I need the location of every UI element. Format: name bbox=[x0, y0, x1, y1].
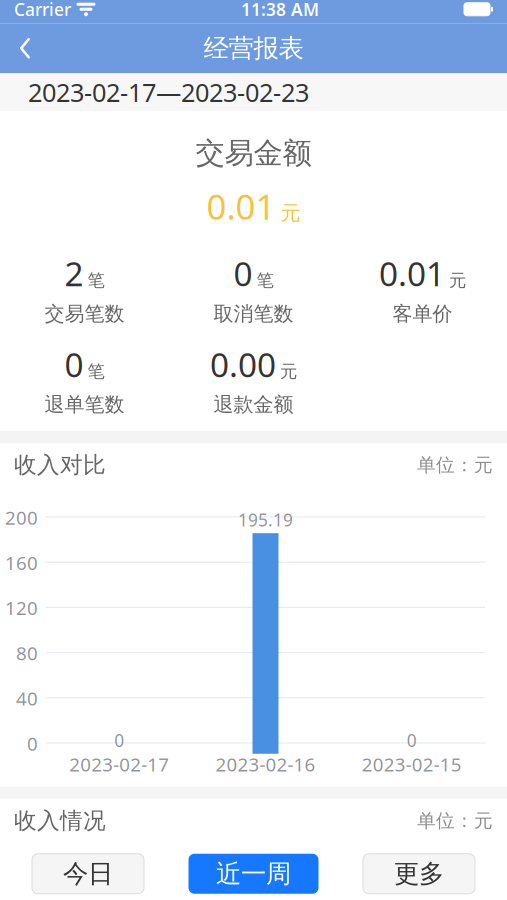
staticText: 0 bbox=[27, 731, 38, 756]
staticText: 元 bbox=[280, 201, 300, 225]
staticText: 0.00 bbox=[210, 342, 276, 386]
staticText: 80 bbox=[16, 641, 38, 665]
staticText: 经营报表 bbox=[203, 33, 303, 64]
button[interactable]: 更多 bbox=[363, 854, 475, 894]
staticText: 收入情况 bbox=[14, 807, 106, 835]
staticText: 笔 bbox=[87, 361, 104, 382]
button[interactable]: 返回 bbox=[0, 23, 50, 73]
staticText: 160 bbox=[5, 550, 38, 575]
staticText: 2 bbox=[64, 251, 83, 296]
staticText: 0 bbox=[407, 729, 417, 752]
staticText: 120 bbox=[5, 595, 38, 620]
button[interactable]: 今日 bbox=[32, 854, 144, 894]
staticText: 2023-02-17—2023-02-23 bbox=[28, 75, 309, 109]
staticText: 11:38 AM bbox=[241, 0, 319, 21]
staticText: 元 bbox=[280, 361, 297, 382]
staticText: 交易金额 bbox=[195, 135, 311, 171]
staticText: 0.01 bbox=[206, 183, 275, 229]
staticText: 交易笔数 bbox=[44, 302, 124, 326]
staticText: 笔 bbox=[87, 270, 104, 291]
staticText: 2023-02-17 bbox=[69, 752, 169, 777]
staticText: 0 bbox=[233, 251, 252, 296]
staticText: 取消笔数 bbox=[213, 302, 293, 326]
staticText: 元 bbox=[449, 270, 466, 291]
staticText: 40 bbox=[16, 686, 38, 711]
button[interactable]: 2023-02-17—2023-02-23 bbox=[0, 73, 507, 111]
staticText: 退款金额 bbox=[213, 392, 293, 417]
staticText: 195.19 bbox=[238, 508, 293, 531]
staticText: 2023-02-15 bbox=[362, 752, 462, 777]
staticText: 今日 bbox=[63, 858, 113, 889]
staticText: Carrier bbox=[14, 0, 71, 21]
staticText: 2023-02-16 bbox=[215, 752, 315, 777]
staticText: 0 bbox=[114, 729, 124, 752]
staticText: 客单价 bbox=[392, 302, 452, 326]
staticText: 0 bbox=[64, 342, 83, 386]
staticText: 单位：元 bbox=[417, 809, 493, 832]
button[interactable]: 近一周 bbox=[188, 854, 318, 894]
staticText: 收入对比 bbox=[14, 451, 106, 479]
staticText: 退单笔数 bbox=[44, 392, 124, 417]
staticText: 单位：元 bbox=[417, 453, 493, 476]
staticText: 200 bbox=[5, 505, 38, 530]
staticText: 0.01 bbox=[379, 251, 445, 296]
staticText: 更多 bbox=[394, 858, 444, 889]
staticText: 近一周 bbox=[216, 858, 291, 889]
staticText: 笔 bbox=[256, 270, 273, 291]
